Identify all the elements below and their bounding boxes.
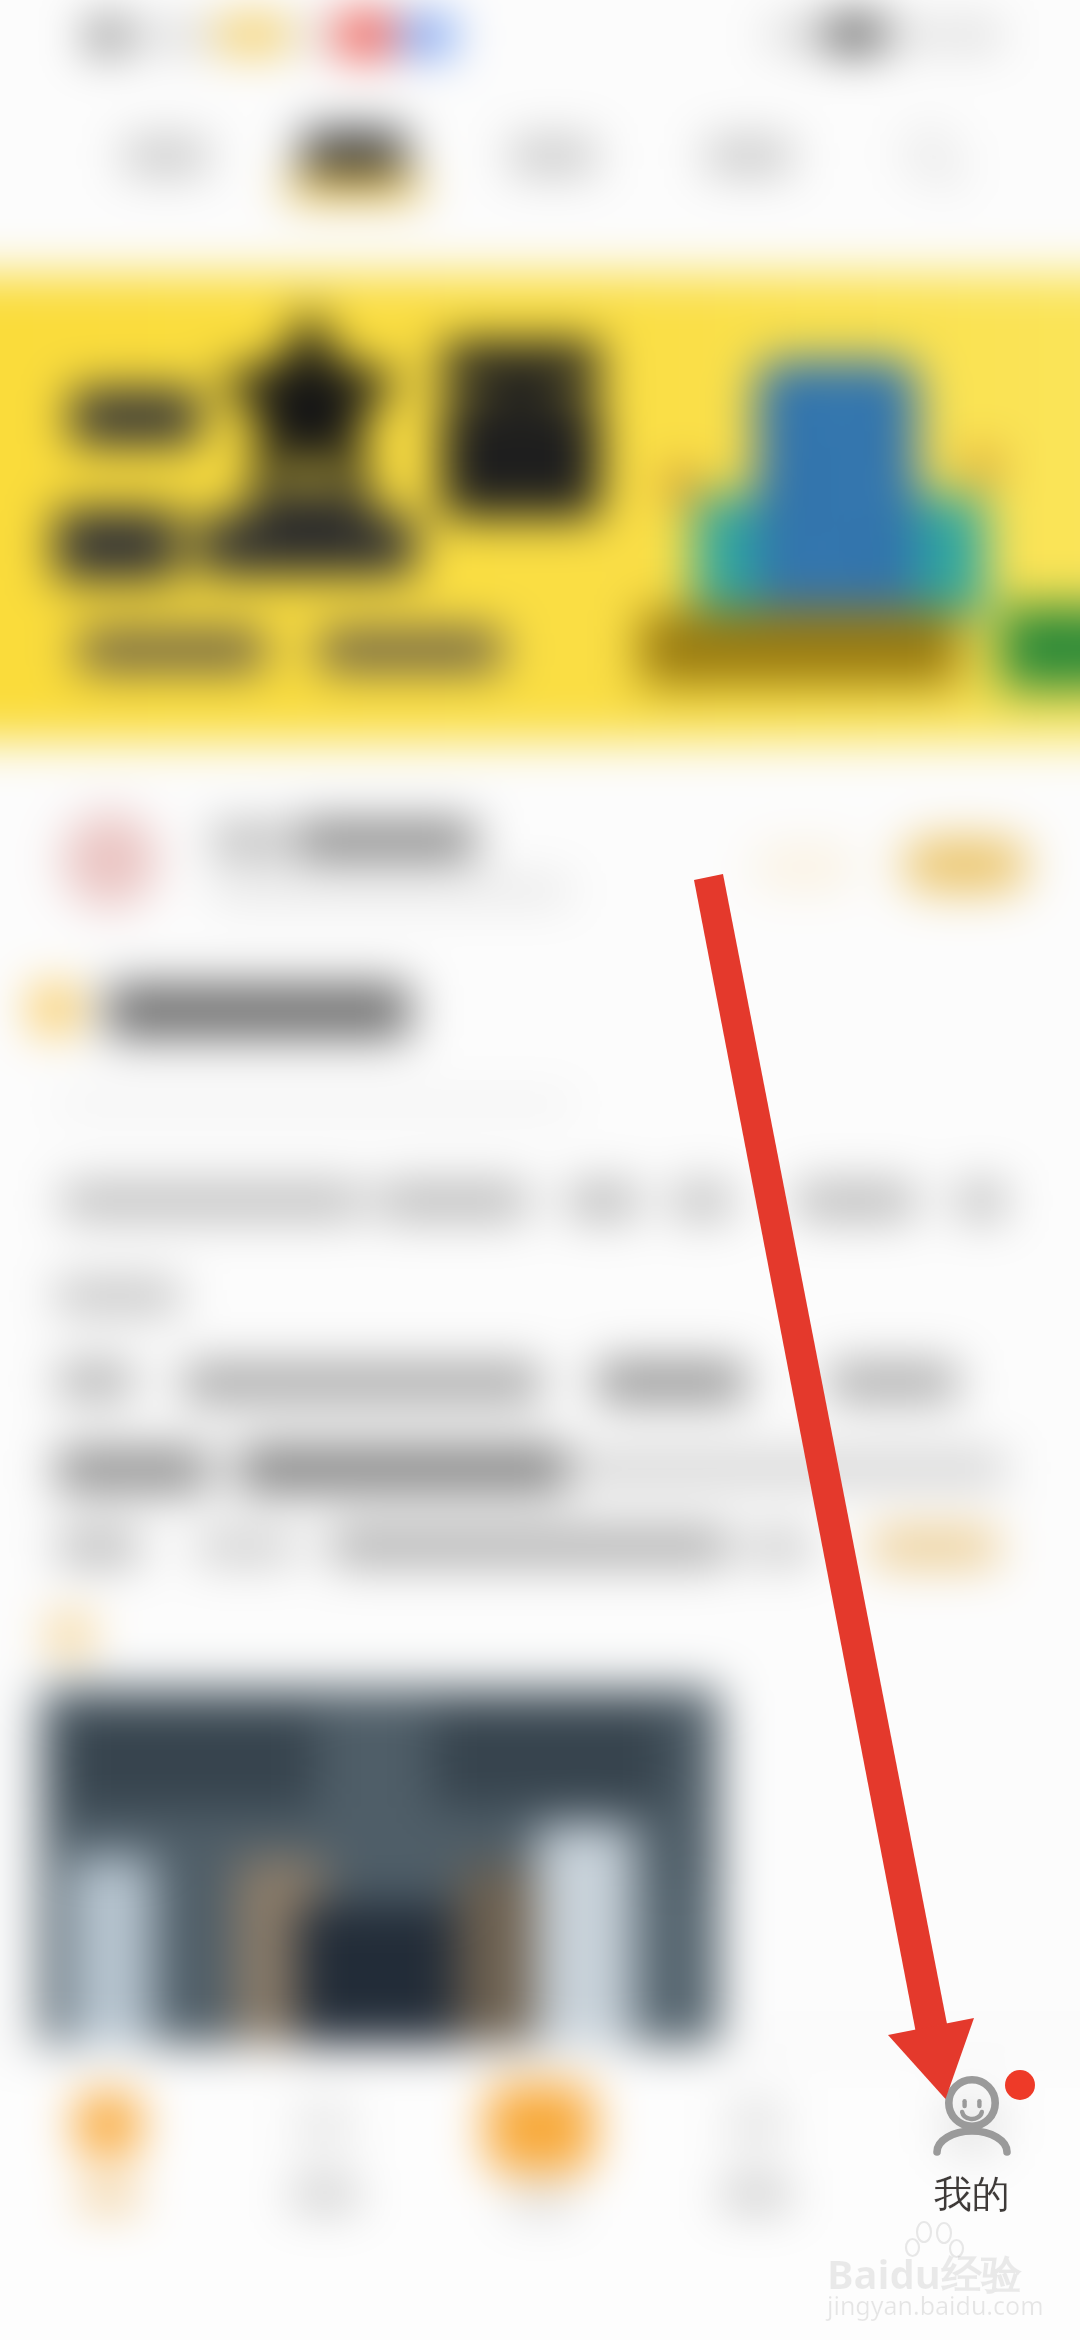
button[interactable]: 我的: [864, 2052, 1080, 2242]
button[interactable]: 发布: [432, 2051, 648, 2241]
button[interactable]: 首页: [0, 2051, 216, 2241]
staticText: Baidu经验: [827, 2246, 1021, 2301]
staticText: jingyan.baidu.com: [827, 2288, 1044, 2322]
button[interactable]: 消息: [648, 2051, 864, 2241]
staticText: 我的: [934, 2170, 1010, 2218]
button[interactable]: 分类: [216, 2051, 432, 2241]
